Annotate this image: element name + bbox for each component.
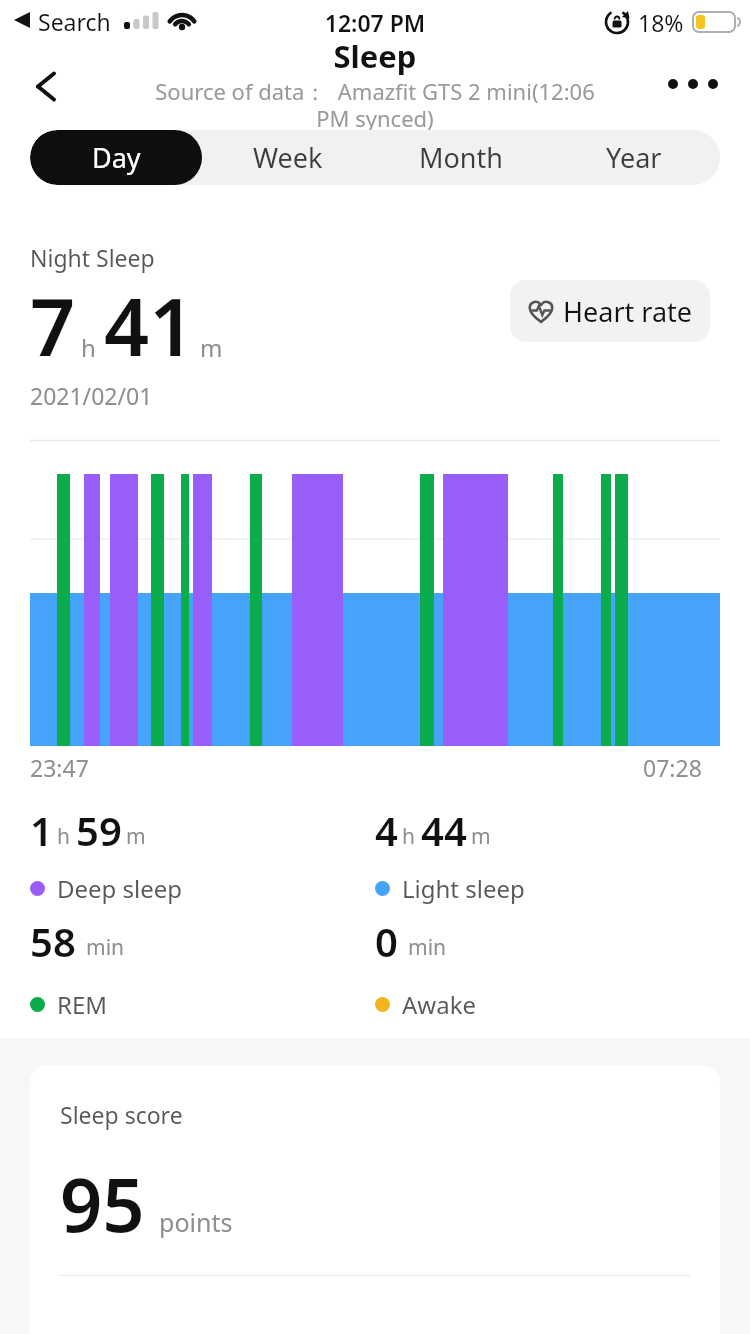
button[interactable] <box>36 72 56 101</box>
staticText: Deep sleep <box>57 872 183 905</box>
button[interactable]: Week <box>202 130 374 185</box>
staticText: 44 <box>421 803 467 857</box>
button[interactable]: Heart rate <box>510 280 710 342</box>
staticText: 2021/02/01 <box>30 380 153 411</box>
staticText: m <box>126 822 146 851</box>
staticText: Sleep score <box>60 1099 183 1130</box>
staticText: 4 <box>375 803 398 857</box>
staticText: h <box>402 822 415 851</box>
staticText: Awake <box>402 988 477 1021</box>
staticText: Light sleep <box>402 872 525 905</box>
staticText: Year <box>606 139 662 176</box>
staticText: REM <box>57 988 108 1021</box>
staticText: 95 <box>60 1153 145 1254</box>
button[interactable]: Month <box>374 130 547 185</box>
staticText: points <box>159 1205 233 1239</box>
button[interactable]: Day <box>30 130 202 185</box>
staticText: Sleep <box>0 35 750 77</box>
button[interactable] <box>668 79 718 89</box>
staticText: PM synced) <box>0 103 750 133</box>
staticText: 41 <box>104 272 195 380</box>
staticText: Month <box>419 139 503 176</box>
staticText: h <box>57 822 70 851</box>
staticText: min <box>86 933 125 962</box>
staticText: 12:07 PM <box>0 7 750 38</box>
staticText: m <box>200 331 223 364</box>
staticText: m <box>471 822 491 851</box>
staticText: h <box>81 331 96 364</box>
staticText: 59 <box>76 803 122 857</box>
staticText: Week <box>253 139 323 176</box>
staticText: 0 <box>375 914 398 968</box>
button[interactable]: Year <box>547 130 720 185</box>
staticText: Night Sleep <box>30 242 155 273</box>
staticText: Search <box>38 6 111 37</box>
staticText: 1 <box>30 803 53 857</box>
staticText: Source of data： Amazfit GTS 2 mini(12:06 <box>0 76 750 106</box>
button[interactable]: Sleep score <box>30 1065 720 1334</box>
staticText: Heart rate <box>563 293 693 330</box>
staticText: 23:47 <box>30 752 89 783</box>
staticText: 7 <box>30 272 76 380</box>
staticText: 07:28 <box>643 752 702 783</box>
button[interactable] <box>0 440 750 746</box>
staticText: min <box>408 933 447 962</box>
staticText: Day <box>92 139 141 176</box>
staticText: 58 <box>30 914 76 968</box>
staticText: 18% <box>638 7 684 38</box>
